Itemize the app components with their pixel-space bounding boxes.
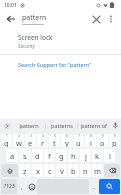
button[interactable]: pattern <box>13 119 45 132</box>
button[interactable]: 0 <box>109 134 120 147</box>
staticText: l <box>109 151 111 161</box>
staticText: 8 <box>90 134 92 138</box>
button[interactable]: l <box>104 149 115 162</box>
button[interactable]: j <box>80 149 91 162</box>
staticText: d <box>35 151 40 161</box>
staticText: y <box>65 138 69 147</box>
staticText: z <box>23 166 27 176</box>
staticText: o <box>100 138 105 147</box>
staticText: 2 <box>18 134 20 138</box>
staticText: s <box>23 151 27 161</box>
button[interactable]: Search Support for "pattern" <box>0 60 121 69</box>
staticText: 5 <box>54 134 56 138</box>
button[interactable]: k <box>92 149 103 162</box>
staticText: x <box>36 166 40 176</box>
button[interactable]: Back <box>3 11 19 27</box>
button[interactable]: g <box>56 149 67 162</box>
button[interactable]: pattern of <box>78 119 109 132</box>
button[interactable]: n <box>80 164 91 177</box>
staticText: 4 <box>42 134 44 138</box>
button[interactable]: 5 <box>49 134 60 147</box>
staticText: 3 <box>30 134 32 138</box>
button[interactable]: 2 <box>13 134 24 147</box>
staticText: v <box>60 166 64 176</box>
button[interactable]: patterns <box>46 119 77 132</box>
button[interactable]: 9 <box>97 134 108 147</box>
staticText: f <box>48 151 51 161</box>
button[interactable]: 7 <box>73 134 84 147</box>
staticText: Search Support for "pattern" <box>18 61 92 68</box>
staticText: m <box>94 166 102 176</box>
staticText: n <box>83 166 88 176</box>
staticText: . <box>93 182 95 192</box>
button[interactable]: Screen lock <box>0 31 121 51</box>
staticText: j <box>85 151 87 161</box>
staticText: pattern <box>22 13 47 23</box>
staticText: p <box>112 138 117 147</box>
button[interactable]: Period <box>90 179 98 194</box>
staticText: i <box>90 138 92 147</box>
staticText: k <box>95 151 100 161</box>
button[interactable]: ?123 <box>1 179 17 194</box>
staticText: r <box>41 138 45 147</box>
staticText: e <box>28 138 33 147</box>
button[interactable]: Comma <box>18 179 26 194</box>
staticText: u <box>76 138 81 147</box>
button[interactable]: a <box>6 149 18 162</box>
staticText: t <box>53 138 56 147</box>
button[interactable]: h <box>68 149 79 162</box>
staticText: 10:01 <box>4 2 17 9</box>
button[interactable]: 6 <box>61 134 72 147</box>
button[interactable]: Voice input <box>109 119 121 132</box>
button[interactable]: Clear search <box>89 12 104 27</box>
button[interactable]: f <box>44 149 55 162</box>
staticText: 6 <box>66 134 68 138</box>
staticText: 1 <box>6 134 8 138</box>
staticText: w <box>16 138 22 147</box>
button[interactable]: d <box>32 149 43 162</box>
button[interactable]: m <box>92 164 103 177</box>
staticText: c <box>48 166 52 176</box>
button[interactable]: Search <box>99 179 120 194</box>
staticText: , <box>21 182 23 192</box>
staticText: a <box>10 151 15 161</box>
staticText: b <box>71 166 76 176</box>
staticText: 9 <box>102 134 104 138</box>
button[interactable]: v <box>56 164 67 177</box>
button[interactable]: c <box>44 164 55 177</box>
button[interactable]: Shift <box>1 164 18 177</box>
button[interactable]: Backspace <box>104 164 120 177</box>
button[interactable]: 4 <box>37 134 48 147</box>
staticText: h <box>71 151 76 161</box>
staticText: ?123 <box>4 183 15 190</box>
staticText: patterns <box>51 122 73 129</box>
staticText: pattern <box>19 122 39 129</box>
button[interactable]: b <box>68 164 79 177</box>
button[interactable]: s <box>19 149 31 162</box>
button[interactable]: 1 <box>1 134 12 147</box>
staticText: q <box>4 138 9 147</box>
staticText: Screen lock <box>18 33 53 42</box>
button[interactable]: z <box>19 164 31 177</box>
staticText: Security <box>18 43 35 49</box>
staticText: 0 <box>114 134 116 138</box>
button[interactable]: More options <box>104 12 118 26</box>
staticText: pattern of <box>81 122 107 129</box>
button[interactable]: 3 <box>25 134 36 147</box>
staticText: g <box>59 151 64 161</box>
button[interactable]: Expand suggestions <box>0 119 13 132</box>
button[interactable]: 8 <box>85 134 96 147</box>
button[interactable]: x <box>32 164 43 177</box>
staticText: 7 <box>78 134 80 138</box>
button[interactable]: Emoji <box>27 179 36 194</box>
